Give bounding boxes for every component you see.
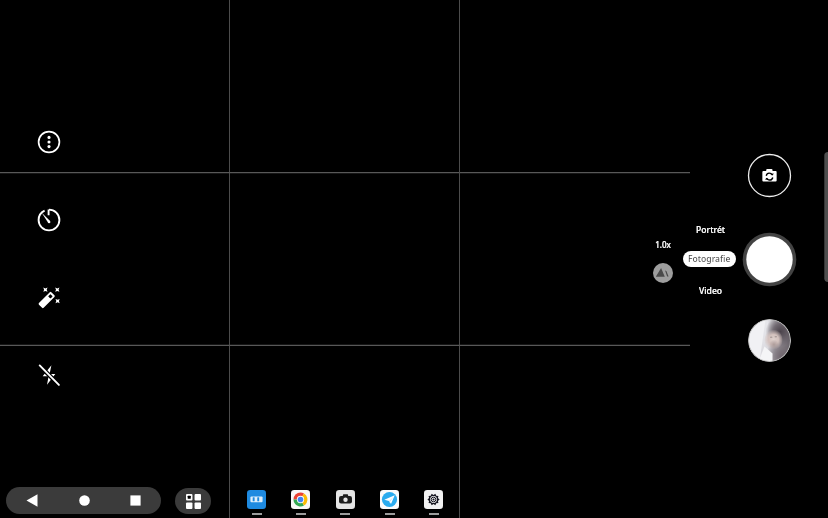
button[interactable]: Portrét [689,222,733,238]
button[interactable]: Back [6,487,58,514]
staticText: Video [699,285,723,297]
button[interactable]: Timer [29,200,69,240]
staticText: Fotografie [688,253,731,265]
button[interactable]: Camera [336,490,355,509]
button[interactable]: Scene mode [653,263,673,283]
button[interactable]: TV [247,490,266,509]
button[interactable]: Telegram [380,490,399,509]
button[interactable]: Recents [110,487,161,514]
button[interactable]: Fotografie [683,251,736,267]
staticText: Portrét [696,224,726,236]
button[interactable]: Video [692,283,730,299]
button[interactable]: Take photo [741,231,798,288]
button[interactable]: Flash off [29,355,69,395]
button[interactable]: More options [29,122,69,162]
button[interactable]: Home [58,487,110,514]
button[interactable]: Chrome [291,490,310,509]
button[interactable]: Auto enhance [29,277,69,317]
button[interactable]: Settings [424,490,443,509]
button[interactable]: Gallery [748,319,791,362]
button[interactable]: Switch camera [746,152,793,199]
button[interactable]: All apps [175,488,211,514]
staticText: 1.0x [655,239,671,250]
